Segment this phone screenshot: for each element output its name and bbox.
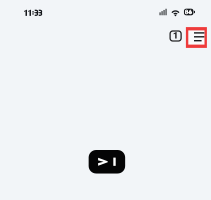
button[interactable]: Menu xyxy=(186,27,207,48)
button[interactable]: Tabs xyxy=(168,25,183,49)
